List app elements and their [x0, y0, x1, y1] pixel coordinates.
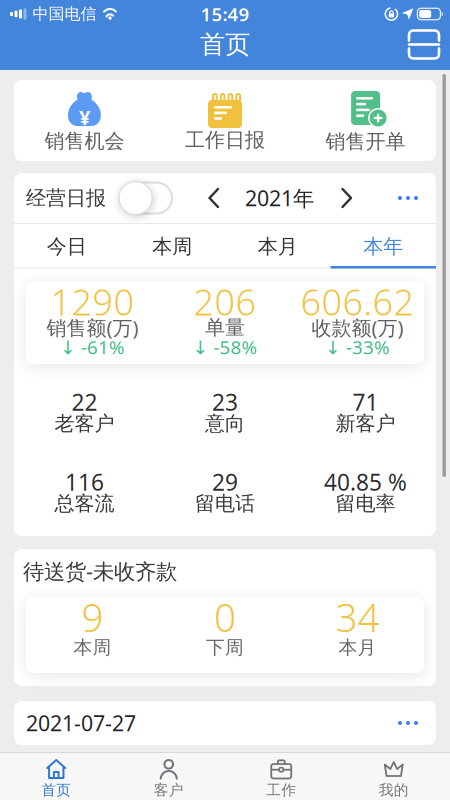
staticText: 销售开单 [326, 129, 406, 154]
staticText: 首页 [200, 29, 250, 60]
staticText: 销售额(万) [46, 314, 138, 341]
staticText: ↓ -33% [325, 335, 390, 359]
staticText: 1290 [50, 278, 134, 325]
staticText: 意向 [205, 411, 245, 436]
staticText: ↓ -61% [60, 335, 125, 359]
staticText: 中国电信 [32, 4, 96, 24]
staticText: 2021-07-27 [26, 709, 136, 737]
staticText: 老客户 [54, 411, 114, 436]
staticText: 收款额(万) [312, 314, 404, 341]
staticText: 本周 [152, 234, 192, 259]
button[interactable]: ¥ [14, 80, 155, 161]
staticText: 0 [214, 591, 236, 643]
staticText: 本月 [258, 234, 298, 259]
staticText: 71 [353, 387, 379, 417]
staticText: 工作 [266, 781, 296, 799]
staticText: 29 [212, 467, 238, 497]
button[interactable]: More options [388, 721, 428, 725]
staticText: 本周 [73, 636, 111, 659]
staticText: 34 [336, 591, 380, 643]
staticText: 首页 [41, 781, 71, 799]
staticText: 23 [212, 387, 238, 417]
button[interactable]: Next year [334, 189, 360, 207]
staticText: 40.85 % [324, 467, 407, 497]
staticText: 总客流 [54, 491, 114, 516]
staticText: 经营日报 [26, 186, 106, 210]
button[interactable]: 工作 [225, 752, 337, 800]
button[interactable]: 首页 [0, 752, 112, 800]
button[interactable]: 销售开单 [295, 80, 436, 161]
staticText: 待送货-未收齐款 [23, 557, 177, 585]
staticText: 客户 [154, 781, 184, 799]
button[interactable]: 本年 [330, 224, 436, 268]
button[interactable]: 工作日报 [155, 80, 295, 161]
staticText: 销售机会 [44, 129, 124, 153]
button[interactable]: Previous year [201, 189, 227, 207]
button[interactable]: 客户 [112, 752, 225, 800]
button[interactable]: More options [388, 196, 428, 200]
staticText: 我的 [379, 781, 409, 799]
staticText: ¥ [79, 104, 90, 131]
staticText: 606.62 [301, 278, 415, 325]
staticText: 留电率 [336, 491, 396, 516]
staticText: 206 [193, 278, 256, 325]
staticText: 单量 [205, 315, 245, 340]
staticText: 116 [65, 467, 104, 497]
staticText: 9 [81, 591, 103, 643]
staticText: 本年 [363, 234, 403, 259]
staticText: 2021年 [245, 184, 314, 212]
button[interactable]: 今日 [14, 224, 119, 268]
button[interactable]: 本月 [225, 224, 330, 268]
staticText: 本月 [339, 636, 377, 659]
button[interactable]: Scan [409, 30, 450, 58]
staticText: 工作日报 [185, 128, 265, 152]
staticText: 22 [71, 387, 97, 417]
staticText: 留电话 [195, 491, 255, 516]
staticText: 新客户 [336, 411, 396, 436]
button[interactable]: 我的 [337, 752, 450, 800]
button[interactable]: Toggle business daily report [119, 181, 173, 214]
staticText: 今日 [47, 234, 87, 259]
staticText: 下周 [206, 636, 244, 659]
staticText: ↓ -58% [192, 335, 257, 359]
staticText: 15:49 [200, 2, 249, 26]
button[interactable]: 本周 [119, 224, 225, 268]
